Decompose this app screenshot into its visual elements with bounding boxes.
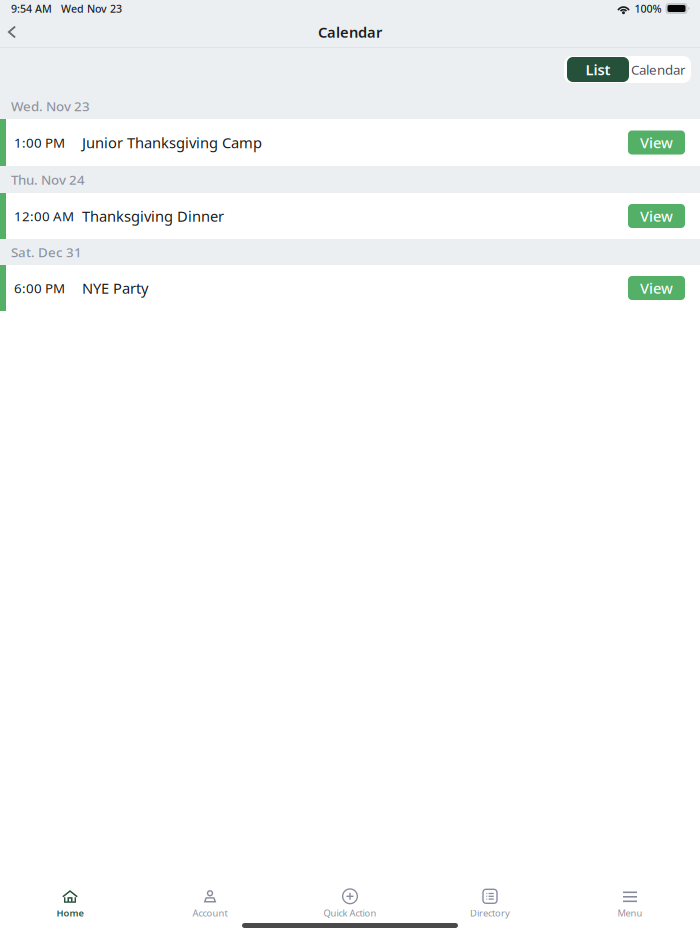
- staticText: Account: [192, 907, 227, 919]
- staticText: NYE Party: [82, 278, 148, 298]
- button[interactable]: 6:00 PM: [0, 265, 700, 311]
- staticText: Thu. Nov 24: [11, 171, 85, 188]
- button[interactable]: Back: [0, 17, 25, 47]
- button[interactable]: 1:00 PM: [0, 119, 700, 166]
- button[interactable]: Menu: [560, 889, 700, 918]
- staticText: Home: [56, 907, 83, 919]
- button[interactable]: Calendar: [629, 57, 688, 82]
- staticText: List: [585, 60, 610, 79]
- staticText: Menu: [617, 907, 642, 919]
- button[interactable]: Home: [0, 889, 140, 918]
- staticText: Quick Action: [323, 907, 376, 919]
- button[interactable]: 12:00 AM: [0, 193, 700, 239]
- staticText: Thanksgiving Dinner: [82, 206, 224, 226]
- staticText: Wed. Nov 23: [11, 97, 90, 115]
- staticText: 9:54 AM: [11, 1, 52, 16]
- staticText: View: [640, 206, 673, 226]
- staticText: Calendar: [318, 22, 382, 42]
- button[interactable]: Account: [140, 889, 280, 918]
- staticText: 6:00 PM: [14, 279, 65, 297]
- staticText: Junior Thanksgiving Camp: [82, 133, 262, 152]
- staticText: 1:00 PM: [14, 134, 65, 151]
- staticText: 100%: [634, 1, 661, 16]
- button[interactable]: List: [567, 57, 629, 82]
- staticText: Sat. Dec 31: [11, 243, 82, 261]
- staticText: Calendar: [631, 61, 686, 78]
- staticText: View: [640, 133, 673, 152]
- button[interactable]: Directory: [420, 889, 560, 918]
- staticText: Directory: [470, 907, 510, 919]
- staticText: Wed Nov 23: [61, 1, 122, 16]
- staticText: View: [640, 278, 673, 298]
- staticText: 12:00 AM: [14, 207, 74, 225]
- button[interactable]: Quick Action: [280, 889, 420, 918]
